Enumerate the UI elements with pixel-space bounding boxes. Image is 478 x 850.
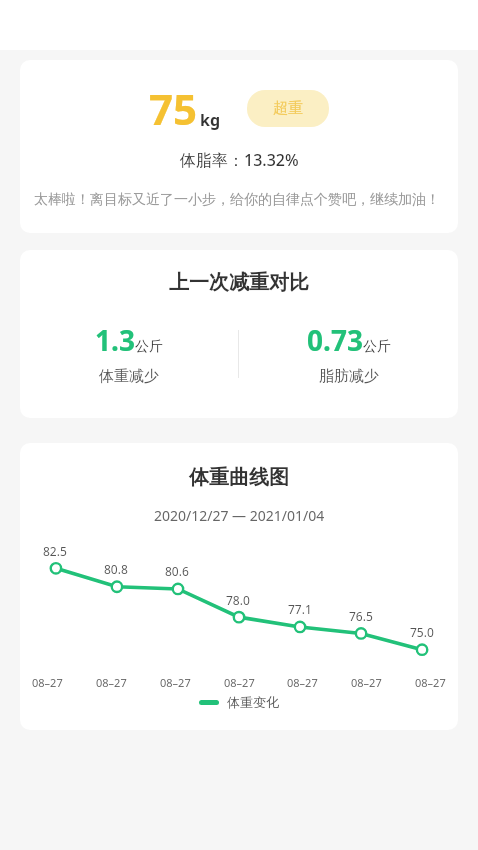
staticText: 08–27	[160, 675, 191, 690]
staticText: 体重减少	[99, 367, 159, 386]
staticText: 体重变化	[227, 694, 279, 710]
staticText: 脂肪减少	[319, 367, 379, 386]
staticText: 超重	[273, 99, 303, 118]
staticText: 78.0	[226, 592, 250, 608]
staticText: 公斤	[363, 338, 391, 356]
staticText: 76.5	[349, 608, 373, 624]
staticText: 80.6	[165, 563, 189, 579]
staticText: 太棒啦！离目标又近了一小步，给你的自律点个赞吧，继续加油！	[34, 191, 444, 209]
staticText: 08–27	[224, 675, 255, 690]
staticText: 体重曲线图	[189, 465, 289, 490]
staticText: 75	[149, 80, 198, 137]
staticText: 上一次减重对比	[169, 270, 309, 295]
button[interactable]: 1.3	[20, 321, 238, 386]
button[interactable]: 上一次减重对比	[20, 250, 458, 418]
staticText: 82.5	[43, 543, 67, 559]
staticText: 80.8	[104, 561, 128, 577]
staticText: 08–27	[287, 675, 318, 690]
staticText: 08–27	[351, 675, 382, 690]
staticText: 08–27	[96, 675, 127, 690]
staticText: 体脂率：13.32%	[180, 149, 299, 171]
staticText: 08–27	[415, 675, 446, 690]
staticText: 1.3	[95, 321, 135, 359]
staticText: 77.1	[288, 601, 312, 617]
staticText: kg	[200, 109, 221, 131]
button[interactable]: 0.73	[239, 321, 458, 386]
staticText: 08–27	[32, 675, 63, 690]
button[interactable]: 体重变化	[199, 694, 279, 710]
staticText: 公斤	[135, 338, 163, 356]
staticText: 2020/12/27 — 2021/01/04	[154, 506, 325, 525]
button[interactable]: 75	[20, 60, 458, 233]
staticText: 75.0	[410, 624, 434, 640]
button[interactable]: 体重曲线图	[20, 443, 458, 730]
staticText: 0.73	[307, 321, 363, 359]
button[interactable]: 超重	[247, 90, 329, 127]
